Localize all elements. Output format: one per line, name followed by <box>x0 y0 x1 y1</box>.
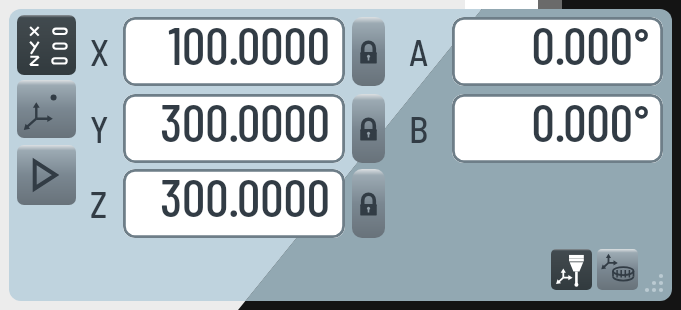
staticText: X <box>90 30 108 73</box>
button[interactable]: Zero axes <box>17 15 76 75</box>
button[interactable]: 0.000 <box>452 17 663 86</box>
staticText: 0.000 <box>531 17 633 75</box>
button[interactable]: 300.0000 <box>123 169 345 238</box>
button[interactable]: Coordinate system <box>17 80 76 138</box>
button[interactable]: Work offsets <box>597 249 638 290</box>
staticText: Z <box>90 182 108 225</box>
button[interactable]: Machine coordinates <box>551 249 592 290</box>
button[interactable]: Run program <box>17 145 76 205</box>
staticText: Y <box>90 107 108 150</box>
staticText: 0.000 <box>531 94 633 152</box>
button[interactable]: Lock axis <box>352 17 385 86</box>
staticText: 300.0000 <box>160 169 330 227</box>
button[interactable]: Lock axis <box>352 94 385 163</box>
staticText: 300.0000 <box>160 94 330 152</box>
button[interactable]: Lock axis <box>352 169 385 238</box>
button[interactable]: 100.0000 <box>123 17 345 86</box>
button[interactable]: 0.000 <box>452 94 663 163</box>
button[interactable]: 300.0000 <box>123 94 345 163</box>
staticText: 100.0000 <box>168 17 330 75</box>
staticText: A <box>409 30 427 73</box>
staticText: B <box>409 107 427 150</box>
